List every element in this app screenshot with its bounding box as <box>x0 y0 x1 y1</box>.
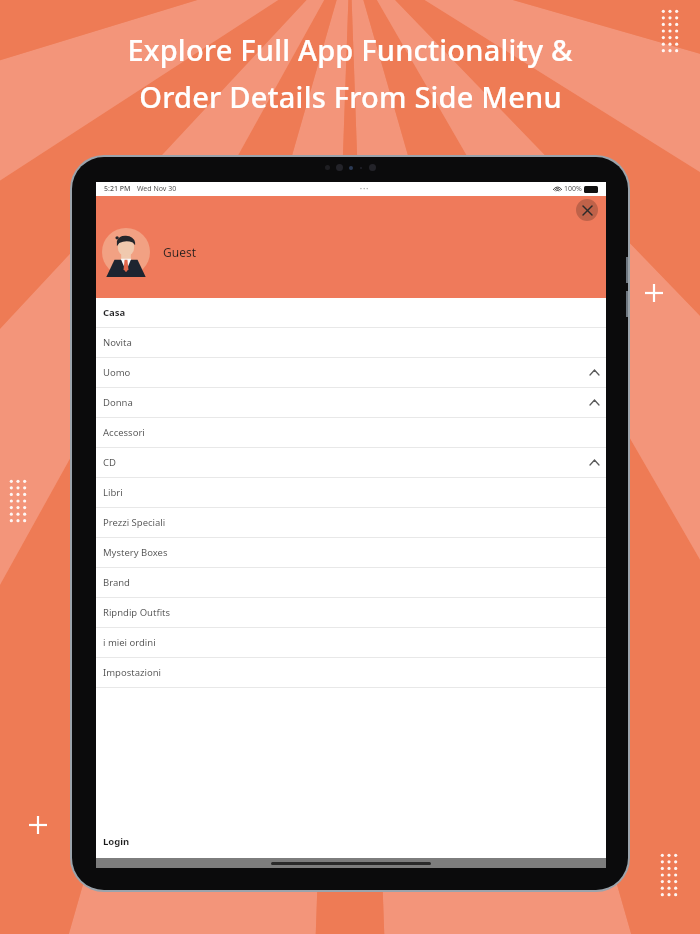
staticText: Accessori <box>103 426 145 439</box>
button[interactable]: Casa <box>96 298 606 328</box>
staticText: i miei ordini <box>103 636 156 649</box>
button[interactable]: Brand <box>96 568 606 598</box>
staticText: • • • <box>360 186 369 193</box>
staticText: Novita <box>103 336 132 349</box>
button[interactable]: Accessori <box>96 418 606 448</box>
staticText: 5:21 PM <box>104 184 131 194</box>
staticText: Explore Full App Functionality & <box>127 30 573 69</box>
staticText: Prezzi Speciali <box>103 516 166 529</box>
staticText: Uomo <box>103 366 131 379</box>
staticText: Wed Nov 30 <box>137 184 177 194</box>
staticText: Libri <box>103 486 123 499</box>
staticText: Brand <box>103 576 130 589</box>
staticText: Casa <box>103 306 126 319</box>
button[interactable]: Mystery Boxes <box>96 538 606 568</box>
staticText: 100% <box>564 184 582 194</box>
staticText: Order Details From Side Menu <box>139 77 562 116</box>
staticText: Donna <box>103 396 133 409</box>
button[interactable]: i miei ordini <box>96 628 606 658</box>
button[interactable]: Impostazioni <box>96 658 606 688</box>
staticText: Login <box>103 835 130 848</box>
staticText: CD <box>103 456 116 469</box>
staticText: Guest <box>163 244 197 260</box>
button[interactable]: Prezzi Speciali <box>96 508 606 538</box>
button[interactable]: Login <box>96 824 606 858</box>
staticText: Impostazioni <box>103 666 161 679</box>
button[interactable]: Novita <box>96 328 606 358</box>
staticText: Ripndip Outfits <box>103 606 171 619</box>
button[interactable]: Uomo <box>96 358 606 388</box>
button[interactable]: Libri <box>96 478 606 508</box>
button[interactable]: Close <box>576 199 598 221</box>
button[interactable]: Donna <box>96 388 606 418</box>
staticText: Mystery Boxes <box>103 546 168 559</box>
button[interactable]: CD <box>96 448 606 478</box>
button[interactable]: Ripndip Outfits <box>96 598 606 628</box>
